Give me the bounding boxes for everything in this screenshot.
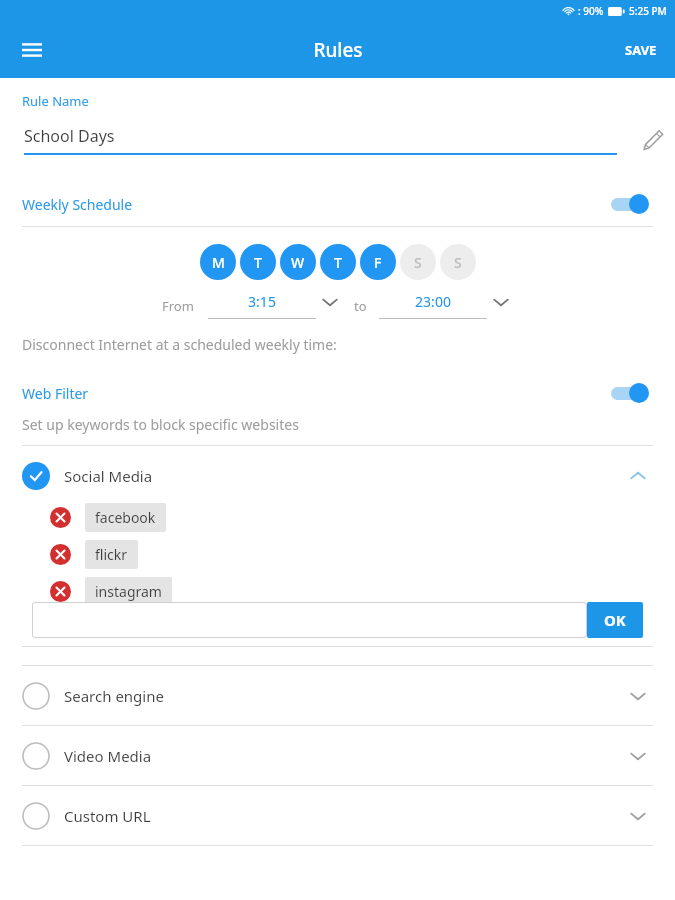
button[interactable]: Toggle xyxy=(607,192,653,216)
staticText: SAVE xyxy=(625,41,657,59)
staticText: From xyxy=(162,297,194,315)
staticText: Search engine xyxy=(64,686,623,706)
staticText: Rule Name xyxy=(22,92,89,110)
staticText: flickr xyxy=(95,545,128,564)
button[interactable]: Remove flickr xyxy=(50,540,675,569)
other: Remove flickr xyxy=(50,544,71,565)
other: Remove linkedin xyxy=(50,618,71,639)
staticText: Video Media xyxy=(64,746,623,766)
button[interactable]: Web Filter xyxy=(22,381,653,405)
button[interactable]: M xyxy=(200,244,236,280)
staticText: Social Media xyxy=(64,466,623,486)
button[interactable]: Social Media xyxy=(22,461,653,491)
button[interactable]: Keyword input xyxy=(32,602,587,638)
staticText: S xyxy=(454,253,462,272)
staticText: OK xyxy=(604,610,626,630)
button[interactable]: T xyxy=(320,244,356,280)
button[interactable]: S xyxy=(440,244,476,280)
button[interactable]: Menu xyxy=(10,28,54,72)
other: Remove facebook xyxy=(50,507,71,528)
button[interactable]: 23:00 xyxy=(379,292,513,319)
staticText: Set up keywords to block specific websit… xyxy=(22,415,299,434)
button[interactable]: F xyxy=(360,244,396,280)
staticText: : 90% xyxy=(578,4,604,18)
staticText: T xyxy=(254,253,262,272)
staticText: Disconnect Internet at a scheduled weekl… xyxy=(22,335,337,354)
button[interactable]: Video Media xyxy=(22,726,653,785)
staticText: to xyxy=(354,297,367,315)
staticText: W xyxy=(291,253,305,272)
staticText: linkedin xyxy=(95,619,148,638)
other: Remove instagram xyxy=(50,581,71,602)
staticText: 3:15 xyxy=(248,292,276,311)
staticText: 23:00 xyxy=(415,292,451,311)
button[interactable]: 3:15 xyxy=(208,292,342,319)
staticText: T xyxy=(334,253,342,272)
button[interactable]: Remove facebook xyxy=(50,503,675,532)
button[interactable]: Custom URL xyxy=(22,786,653,845)
button[interactable]: SAVE xyxy=(615,31,667,69)
button[interactable]: T xyxy=(240,244,276,280)
staticText: instagram xyxy=(95,582,162,601)
button[interactable]: Remove linkedin xyxy=(50,614,675,643)
button[interactable]: Search engine xyxy=(22,666,653,725)
button[interactable]: Toggle xyxy=(607,381,653,405)
staticText: Custom URL xyxy=(64,806,623,826)
button[interactable]: W xyxy=(280,244,316,280)
button[interactable]: Remove instagram xyxy=(50,577,675,606)
button[interactable]: School Days xyxy=(0,118,675,162)
staticText: School Days xyxy=(24,125,115,147)
staticText: Rules xyxy=(313,37,363,63)
staticText: Web Filter xyxy=(22,384,607,403)
staticText: S xyxy=(414,253,422,272)
button[interactable]: Weekly Schedule xyxy=(22,192,653,216)
staticText: F xyxy=(374,253,382,272)
button[interactable]: OK xyxy=(587,602,643,638)
staticText: M xyxy=(212,253,225,272)
button[interactable]: S xyxy=(400,244,436,280)
staticText: Weekly Schedule xyxy=(22,195,607,214)
staticText: 5:25 PM xyxy=(629,4,667,18)
button[interactable]: Edit rule name xyxy=(631,118,675,162)
staticText: facebook xyxy=(95,508,156,527)
